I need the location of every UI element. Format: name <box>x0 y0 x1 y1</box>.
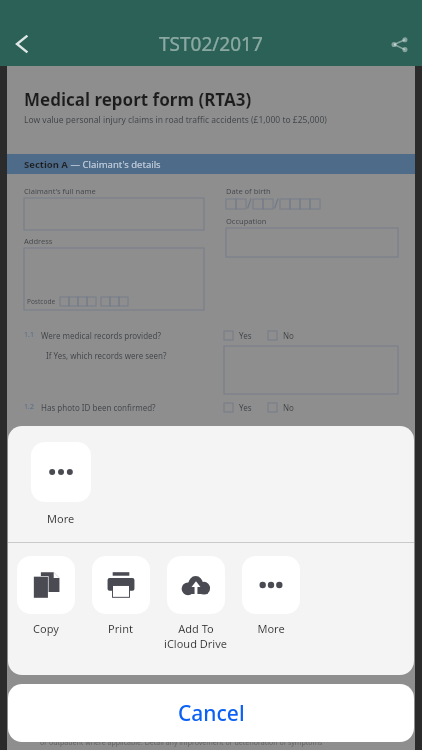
button[interactable]: Back <box>0 21 46 67</box>
staticText: 1.1 <box>24 330 34 340</box>
button[interactable]: Copy <box>8 556 83 636</box>
staticText: Claimant's full name <box>24 186 96 196</box>
staticText: Occupation <box>226 216 267 226</box>
staticText: Low value personal injury claims in road… <box>24 114 327 126</box>
staticText: — Claimant's details <box>68 158 161 171</box>
staticText: No <box>283 330 294 341</box>
staticText: Print <box>108 621 133 636</box>
button[interactable]: Cancel <box>8 684 414 742</box>
staticText: TST02/2017 <box>159 31 263 57</box>
staticText: Date of birth <box>226 186 271 196</box>
staticText: Yes <box>239 330 252 341</box>
staticText: Were medical records provided? <box>41 330 161 341</box>
staticText: Postcode <box>27 297 56 306</box>
staticText: Section A <box>24 158 68 171</box>
staticText: Copy <box>33 621 59 636</box>
staticText: Address <box>24 236 53 246</box>
staticText: More <box>47 511 75 526</box>
button[interactable]: More <box>233 556 308 636</box>
staticText: iCloud Drive <box>164 636 227 651</box>
button[interactable]: More <box>26 442 96 526</box>
staticText: Add To <box>178 621 214 636</box>
staticText: If Yes, which records were seen? <box>46 350 167 361</box>
staticText: Yes <box>239 402 252 413</box>
staticText: 1.2 <box>24 402 34 412</box>
staticText: or outpatient where applicable. Detail a… <box>40 738 323 748</box>
staticText: Medical report form (RTA3) <box>24 88 252 111</box>
staticText: More <box>257 621 285 636</box>
staticText: Has photo ID been confirmed? <box>41 402 156 413</box>
staticText: Cancel <box>178 699 245 728</box>
staticText: No <box>283 402 294 413</box>
button[interactable]: Add To <box>158 556 233 651</box>
button[interactable]: Share <box>376 21 422 67</box>
button[interactable]: Print <box>83 556 158 636</box>
